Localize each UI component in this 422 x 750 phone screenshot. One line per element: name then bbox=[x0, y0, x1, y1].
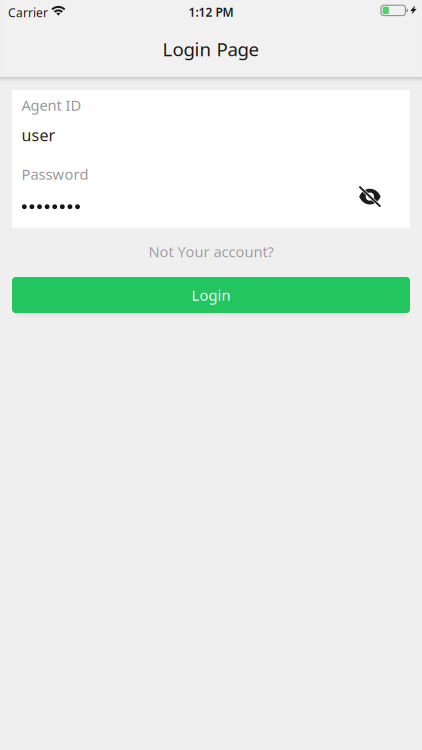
staticText: user bbox=[21, 124, 55, 146]
staticText: Carrier bbox=[8, 4, 48, 20]
staticText: Login bbox=[191, 285, 230, 305]
staticText: Login Page bbox=[162, 37, 259, 61]
staticText: 1:12 PM bbox=[188, 4, 233, 20]
button[interactable]: Not Your account? bbox=[0, 243, 422, 259]
staticText: Agent ID bbox=[21, 95, 81, 115]
staticText: Password bbox=[21, 164, 88, 184]
button[interactable]: Login bbox=[12, 277, 410, 313]
staticText: Not Your account? bbox=[148, 242, 273, 261]
button[interactable]: Show password bbox=[359, 189, 381, 204]
